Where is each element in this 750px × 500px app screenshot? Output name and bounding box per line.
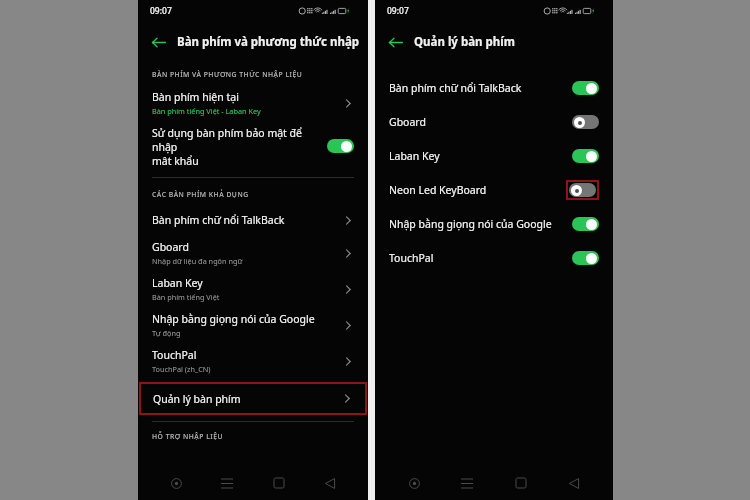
button[interactable]: Gboard <box>138 235 368 271</box>
other: Back <box>151 35 166 50</box>
button[interactable]: Home <box>265 469 293 497</box>
staticText: TouchPal (zh_CN) <box>152 364 211 374</box>
button[interactable]: Bàn phím chữ nổi TalkBack <box>375 71 613 104</box>
button[interactable]: Neon Led KeyBoard <box>375 173 613 206</box>
staticText: Bàn phím hiện tại <box>152 90 239 104</box>
staticText: Bàn phím chữ nổi TalkBack <box>389 81 572 95</box>
staticText: TouchPal <box>152 348 197 362</box>
button[interactable]: Gboard <box>375 105 613 138</box>
button[interactable]: Back <box>375 27 613 57</box>
staticText: TouchPal <box>389 251 572 265</box>
button[interactable]: Sử dụng bàn phím bảo mật để nhập mật khẩ… <box>138 126 368 166</box>
staticText: BÀN PHÍM VÀ PHƯƠNG THỨC NHẬP LIỆU <box>152 70 303 79</box>
staticText: Bàn phím chữ nổi TalkBack <box>152 213 285 227</box>
staticText: Bàn phím và phương thức nhập <box>177 34 360 50</box>
staticText: Neon Led KeyBoard <box>389 183 566 197</box>
button[interactable]: TouchPal <box>138 343 368 379</box>
button[interactable]: Assistant <box>162 469 190 497</box>
staticText: Gboard <box>152 240 189 254</box>
button[interactable]: Bàn phím chữ nổi TalkBack <box>138 205 368 235</box>
staticText: Nhập bằng giọng nói của Google <box>389 217 572 231</box>
staticText: Bàn phím tiếng Việt <box>152 292 220 302</box>
button[interactable]: Laban Key <box>375 139 613 172</box>
staticText: Gboard <box>389 115 572 129</box>
button[interactable]: Laban Key <box>138 271 368 307</box>
button[interactable]: TouchPal <box>375 241 613 274</box>
button[interactable]: Menu <box>453 469 481 497</box>
button[interactable]: Nhập bằng giọng nói của Google <box>375 207 613 240</box>
staticText: 09:07 <box>387 5 409 17</box>
staticText: Tự động <box>152 328 181 338</box>
staticText: Quản lý bàn phím <box>153 392 241 406</box>
staticText: Quản lý bàn phím <box>414 34 515 50</box>
button[interactable]: Bàn phím hiện tại <box>138 88 368 118</box>
button[interactable]: Quản lý bàn phím <box>139 382 367 415</box>
staticText: Laban Key <box>389 149 572 163</box>
staticText: 09:07 <box>150 5 172 17</box>
staticText: HỖ TRỢ NHẬP LIỆU <box>152 432 224 441</box>
button[interactable]: Assistant <box>400 469 428 497</box>
staticText: Nhập bằng giọng nói của Google <box>152 312 315 326</box>
staticText: Sử dụng bàn phím bảo mật để nhập mật khẩ… <box>152 126 327 166</box>
button[interactable]: Back <box>138 27 368 57</box>
button[interactable]: Menu <box>213 469 241 497</box>
button[interactable]: Back <box>560 469 588 497</box>
button[interactable]: Home <box>507 469 535 497</box>
staticText: Nhập dữ liệu đa ngôn ngữ <box>152 256 243 266</box>
button[interactable]: Back <box>316 469 344 497</box>
staticText: CÁC BÀN PHÍM KHẢ DỤNG <box>152 190 249 199</box>
staticText: Bàn phím tiếng Việt - Laban Key <box>152 106 261 116</box>
button[interactable]: Nhập bằng giọng nói của Google <box>138 307 368 343</box>
other: Back <box>388 35 403 50</box>
staticText: Laban Key <box>152 276 203 290</box>
